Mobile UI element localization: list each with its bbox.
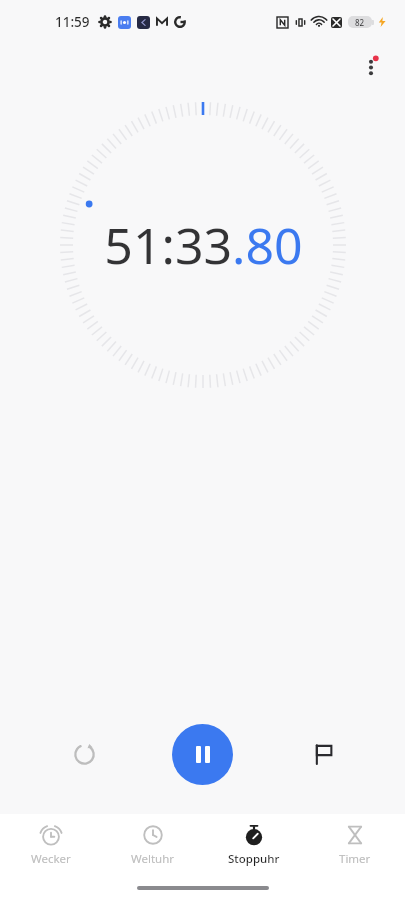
button[interactable]: Zurücksetzen [62,732,106,776]
button[interactable]: Wecker [0,818,102,873]
staticText: 11:59 [55,13,90,31]
button[interactable]: Timer [304,818,405,873]
button[interactable]: Weitere Optionen [351,47,391,87]
button[interactable]: Pause [172,724,233,785]
staticText: 51:33.80 [104,211,303,279]
staticText: Stoppuhr [228,851,280,867]
button[interactable]: Runde [301,732,345,776]
staticText: Wecker [31,851,71,867]
staticText: Weltuhr [131,851,175,867]
staticText: 82 [355,17,365,28]
button[interactable]: Weltuhr [102,818,203,873]
button[interactable]: Stoppuhr [203,818,304,873]
staticText: Timer [339,851,371,867]
